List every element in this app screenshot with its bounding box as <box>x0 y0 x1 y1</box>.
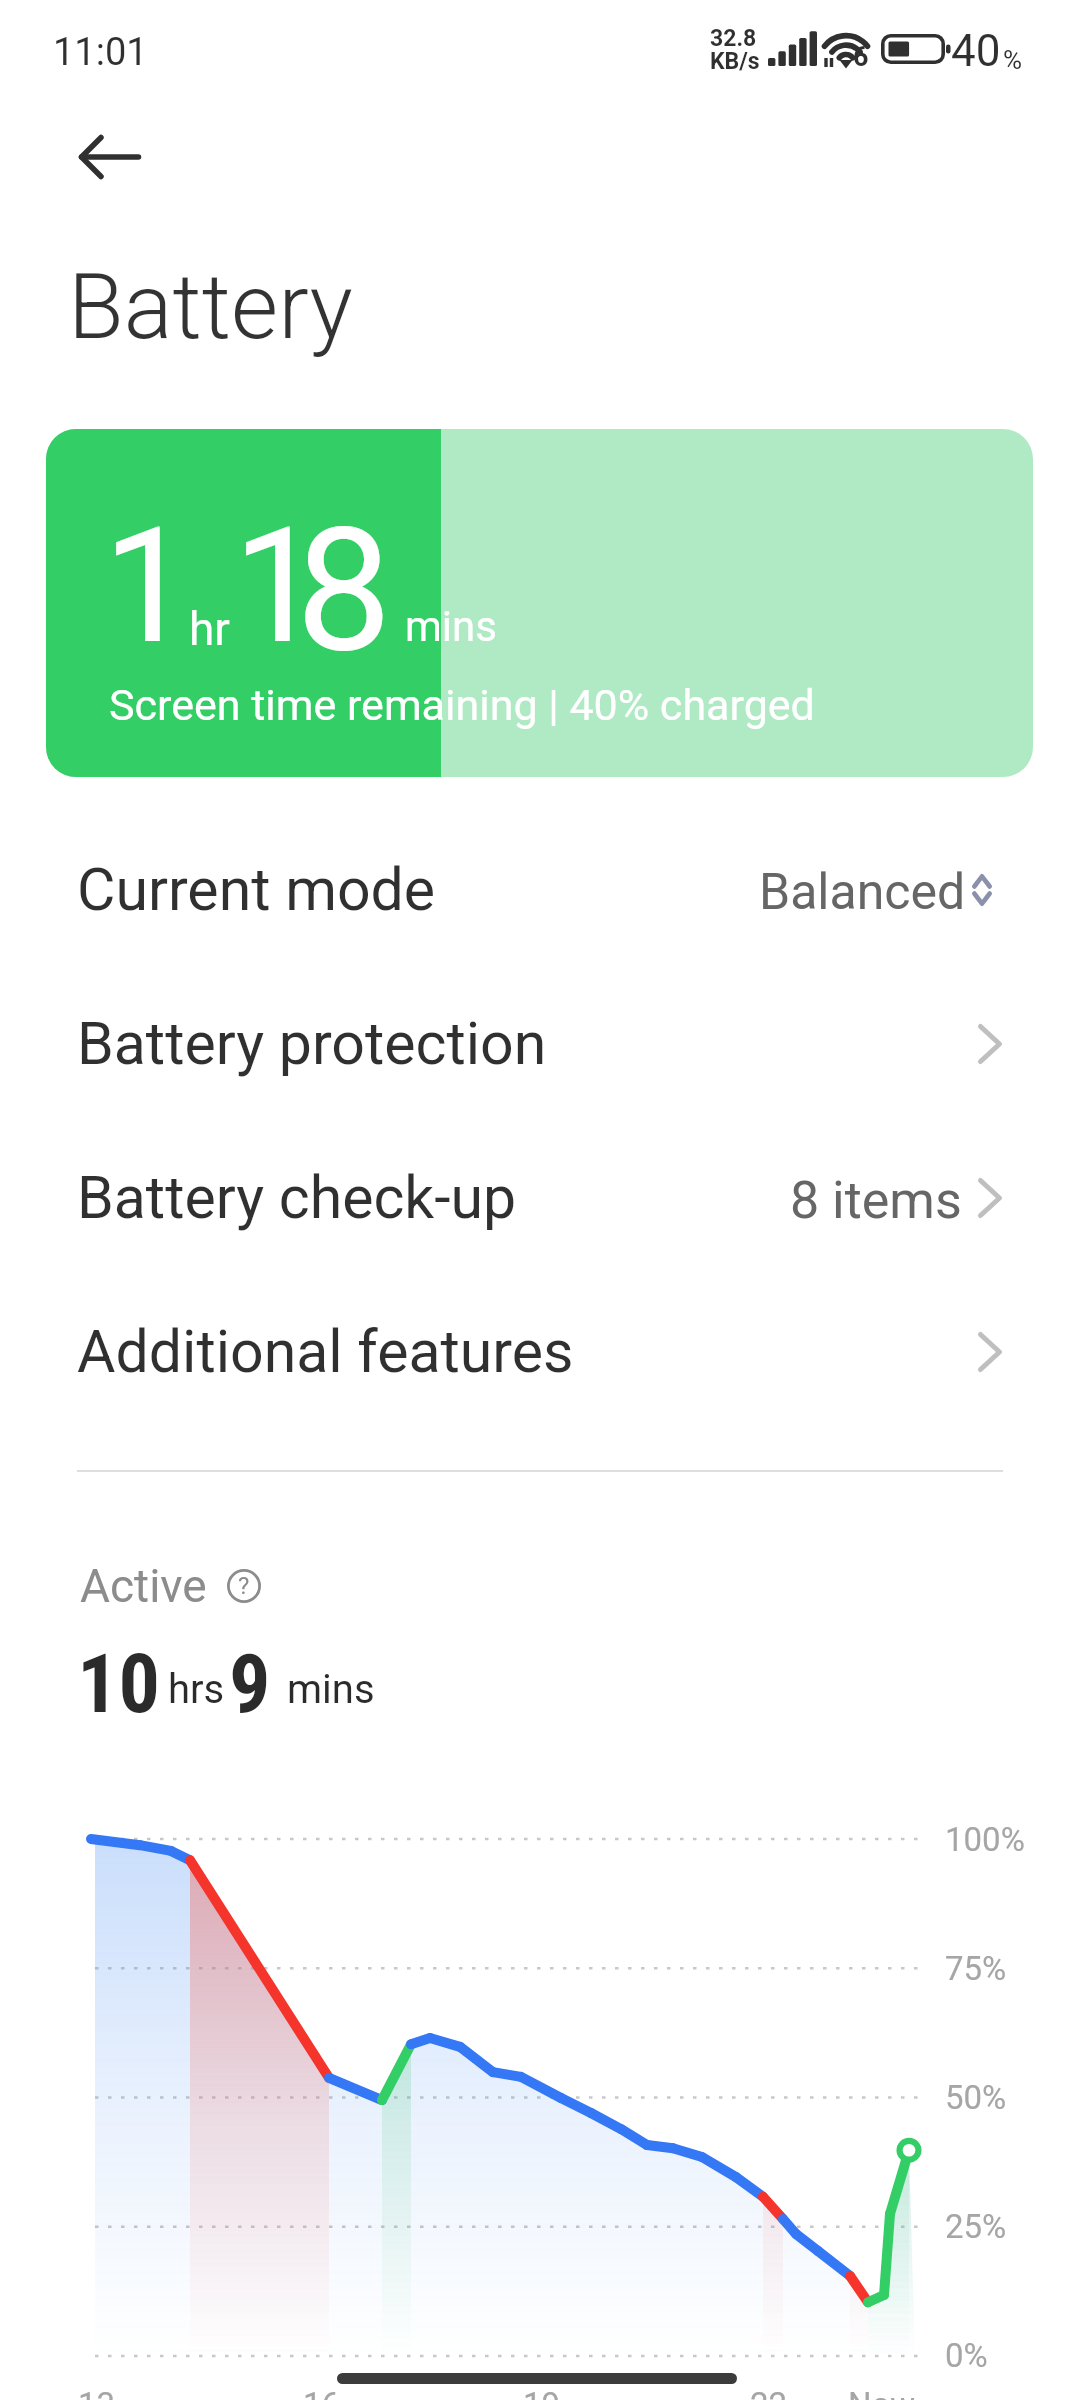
staticText: mins <box>287 1666 375 1713</box>
staticText: ? <box>238 1572 250 1600</box>
staticText: 6 <box>853 41 869 73</box>
staticText: 10 <box>77 1636 160 1732</box>
staticText: 11:01 <box>53 30 148 75</box>
staticText: Battery protection <box>77 1009 547 1078</box>
button[interactable]: Back <box>50 112 170 202</box>
staticText: Active <box>80 1559 207 1613</box>
staticText: 1 <box>233 493 323 679</box>
staticText: 1 <box>103 493 193 679</box>
staticText: 8 items <box>790 1170 962 1231</box>
button[interactable]: Current mode <box>0 812 1080 967</box>
staticText: 0% <box>945 2336 988 2375</box>
button[interactable]: Battery protection <box>0 966 1080 1121</box>
button[interactable]: Battery check-up <box>0 1120 1080 1275</box>
staticText: 100% <box>945 1820 1025 1859</box>
staticText: Current mode <box>77 855 436 924</box>
staticText: 16 <box>303 2385 341 2400</box>
staticText: Battery check-up <box>77 1163 517 1232</box>
staticText: 8 <box>296 491 392 690</box>
staticText: 19 <box>523 2385 561 2400</box>
staticText: Additional features <box>77 1317 574 1386</box>
button[interactable]: Help <box>227 1569 261 1603</box>
staticText: 9 <box>229 1636 271 1732</box>
staticText: 22 <box>750 2385 788 2400</box>
staticText: KB/s <box>710 48 760 75</box>
staticText: % <box>1003 45 1023 75</box>
staticText: Now <box>848 2385 916 2400</box>
staticText: 25% <box>945 2207 1007 2246</box>
staticText: hr <box>189 602 230 656</box>
button[interactable]: Additional features <box>0 1274 1080 1429</box>
staticText: Battery <box>68 254 353 361</box>
staticText: 50% <box>945 2078 1007 2117</box>
staticText: 75% <box>945 1949 1007 1988</box>
staticText: Screen time remaining | 40% charged <box>109 680 815 730</box>
staticText: 32.8 <box>710 25 757 52</box>
staticText: mins <box>405 602 497 651</box>
staticText: Balanced <box>759 863 966 922</box>
staticText: hrs <box>168 1666 225 1713</box>
staticText: 13 <box>78 2385 116 2400</box>
staticText: 40 <box>951 25 1001 77</box>
button[interactable]: 1 <box>46 429 1033 777</box>
